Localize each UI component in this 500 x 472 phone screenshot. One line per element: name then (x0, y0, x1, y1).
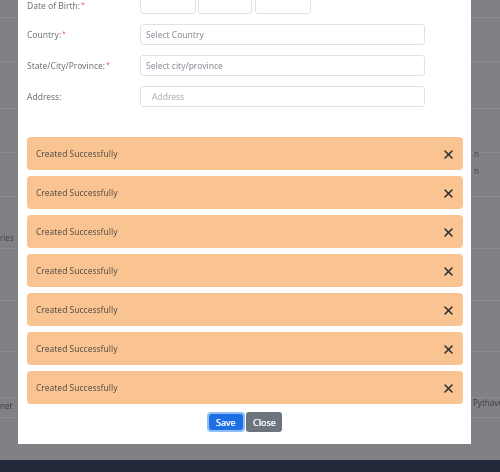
button[interactable]: Created Successfully (27, 215, 463, 248)
staticText: Created Successfully (36, 187, 118, 199)
staticText: Address (152, 91, 185, 103)
staticText: Close (253, 416, 276, 428)
button[interactable]: Dismiss (438, 300, 458, 320)
staticText: Created Successfully (36, 304, 118, 316)
staticText: net (0, 400, 13, 411)
button[interactable]: Dismiss (438, 144, 458, 164)
staticText: Created Successfully (36, 265, 118, 277)
staticText: * (81, 0, 85, 10)
button[interactable]: Date part (140, 0, 196, 14)
button[interactable]: Select Country (140, 24, 425, 45)
button[interactable]: Created Successfully (27, 371, 463, 404)
staticText: Created Successfully (36, 148, 118, 160)
button[interactable]: Created Successfully (27, 293, 463, 326)
staticText: Created Successfully (36, 226, 118, 238)
staticText: ries (0, 232, 14, 243)
staticText: Created Successfully (36, 382, 118, 394)
staticText: State/City/Province: (27, 60, 106, 72)
button[interactable]: Dismiss (438, 378, 458, 398)
button[interactable]: Created Successfully (27, 137, 463, 170)
button[interactable]: Select city/province (140, 55, 425, 76)
button[interactable]: Created Successfully (27, 176, 463, 209)
button[interactable]: Save (209, 414, 243, 430)
button[interactable]: Dismiss (438, 339, 458, 359)
staticText: Country: (27, 29, 62, 41)
staticText: Pythaven (473, 397, 500, 408)
button[interactable]: Date part (255, 0, 311, 14)
staticText: * (106, 60, 110, 70)
button[interactable]: Created Successfully (27, 332, 463, 365)
button[interactable]: Dismiss (438, 261, 458, 281)
staticText: n (474, 165, 479, 176)
button[interactable]: Close (246, 412, 282, 432)
staticText: * (62, 29, 66, 39)
staticText: n (474, 148, 479, 159)
staticText: Select Country (146, 29, 204, 41)
button[interactable]: Date part (198, 0, 252, 14)
staticText: Address: (27, 91, 62, 103)
staticText: Select city/province (146, 60, 223, 72)
button[interactable]: Dismiss (438, 183, 458, 203)
button[interactable]: Created Successfully (27, 254, 463, 287)
staticText: Date of Birth: (27, 0, 81, 12)
button[interactable]: Dismiss (438, 222, 458, 242)
staticText: Save (216, 416, 236, 428)
staticText: Created Successfully (36, 343, 118, 355)
button[interactable]: Address (140, 86, 425, 107)
